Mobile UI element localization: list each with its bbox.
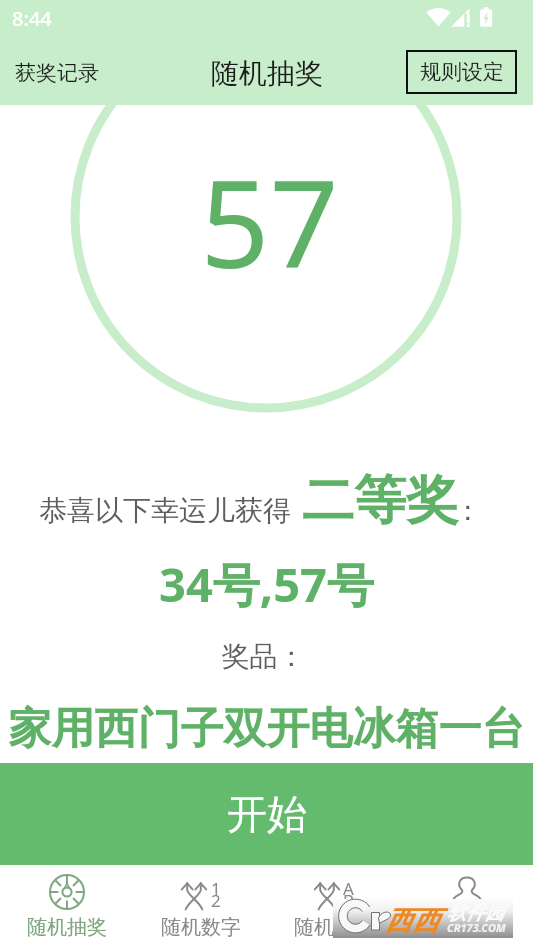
staticText: 开始 (227, 789, 307, 839)
staticText: 家用西门子双开电冰箱一台 (0, 702, 533, 756)
staticText: 8:44 (12, 5, 52, 32)
button[interactable]: 随机 (134, 866, 267, 948)
button[interactable]: 随机点名 (400, 866, 533, 948)
staticText: 34号,57号 (0, 552, 533, 616)
staticText: 规则设定 (420, 59, 504, 85)
other: 随机 (314, 882, 354, 910)
staticText: B (343, 889, 354, 912)
button[interactable]: 开始 (0, 763, 533, 865)
staticText: 西西 (385, 904, 439, 938)
other: 随机抽奖 (49, 874, 85, 910)
staticText: CR173.COM (447, 920, 506, 935)
button[interactable]: 规则设定 (406, 50, 517, 94)
staticText: 二等奖 (302, 468, 458, 534)
staticText: 随机字母 (294, 915, 374, 940)
button[interactable]: 随机 (267, 866, 400, 948)
staticText: 随机抽奖 (27, 915, 107, 940)
staticText: 随机抽奖 (211, 56, 323, 91)
staticText: 奖品： (0, 639, 530, 674)
other: 随机点名 (450, 876, 484, 908)
staticText: 获奖记录 (15, 60, 99, 86)
staticText: 随机数字 (161, 915, 241, 940)
staticText: 2 (211, 889, 221, 912)
staticText: 随机点名 (427, 915, 507, 940)
button[interactable]: 随机抽奖 (0, 866, 134, 948)
staticText: 1 (211, 877, 221, 900)
other: 随机 (181, 882, 221, 910)
staticText: 57 (3, 139, 533, 304)
button[interactable]: 获奖记录 (0, 50, 114, 96)
staticText: ： (454, 493, 482, 528)
staticText: A (343, 877, 354, 900)
staticText: 软件园 (447, 901, 504, 925)
staticText: 恭喜以下幸运儿获得 (39, 493, 291, 528)
